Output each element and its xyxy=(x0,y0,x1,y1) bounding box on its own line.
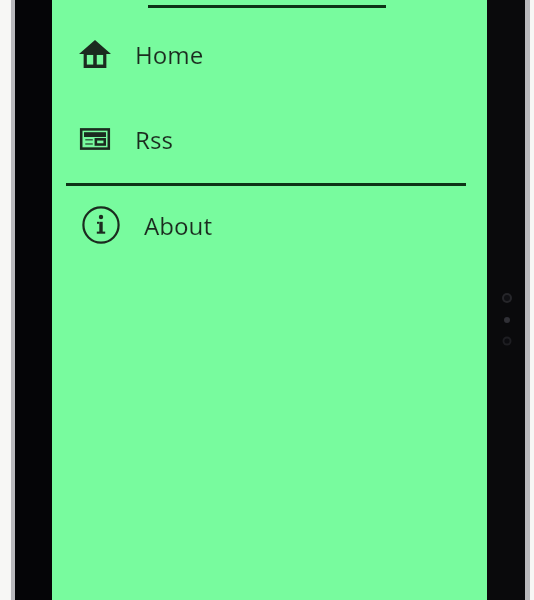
staticText: About xyxy=(144,209,213,242)
button[interactable]: Rss xyxy=(52,111,487,167)
other: Home xyxy=(79,38,111,70)
other: Rss xyxy=(80,124,110,154)
other: About xyxy=(81,205,121,245)
staticText: Rss xyxy=(135,123,173,156)
button[interactable]: About xyxy=(52,197,487,253)
staticText: Home xyxy=(135,38,204,71)
button[interactable]: Home xyxy=(52,26,487,82)
